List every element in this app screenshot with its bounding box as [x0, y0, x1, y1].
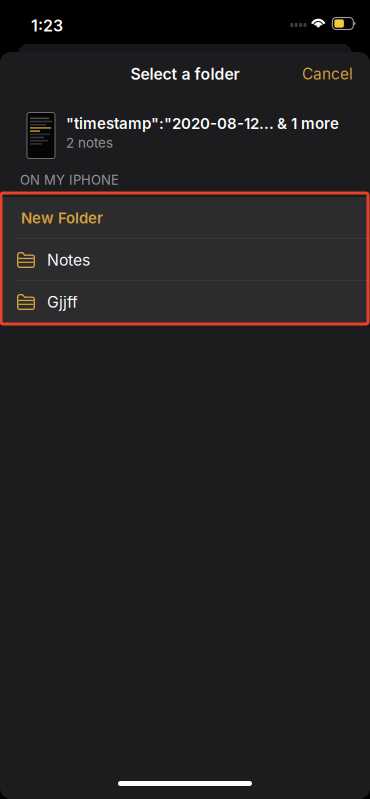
- staticText: Cancel: [302, 65, 353, 83]
- staticText: 1:23: [31, 16, 63, 35]
- button[interactable]: Cancel: [292, 56, 363, 92]
- button[interactable]: New Folder: [0, 197, 370, 239]
- staticText: New Folder: [21, 209, 103, 227]
- staticText: 2 notes: [66, 135, 113, 151]
- staticText: Gjjff: [47, 292, 78, 311]
- staticText: ON MY IPHONE: [20, 172, 119, 188]
- staticText: Notes: [47, 250, 90, 269]
- staticText: "timestamp":"2020-08-12... & 1 more: [66, 114, 339, 133]
- button[interactable]: Notes: [0, 239, 370, 281]
- button[interactable]: Gjjff: [0, 281, 370, 323]
- staticText: Select a folder: [130, 64, 239, 83]
